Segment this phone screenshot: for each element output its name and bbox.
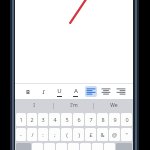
staticText: ; — [54, 131, 56, 138]
button[interactable]: 4 — [49, 113, 60, 126]
button[interactable] — [104, 143, 115, 150]
staticText: A — [74, 87, 78, 95]
button[interactable]: Drawing canvas — [15, 0, 133, 83]
staticText: I — [33, 102, 35, 109]
staticText: - — [20, 131, 22, 138]
button[interactable] — [68, 143, 79, 150]
button[interactable]: & — [97, 128, 108, 141]
button[interactable]: We — [94, 99, 133, 112]
button[interactable]: 3 — [38, 113, 48, 126]
button[interactable]: : — [38, 128, 48, 141]
button[interactable]: - — [16, 128, 26, 141]
staticText: ) — [78, 131, 80, 138]
staticText: / — [31, 131, 34, 138]
staticText: @ — [112, 131, 117, 138]
button[interactable]: Align right — [115, 86, 127, 97]
staticText: I — [42, 88, 45, 96]
button[interactable]: ( — [61, 128, 72, 141]
staticText: We — [110, 102, 118, 109]
button[interactable] — [32, 143, 43, 150]
staticText: U — [57, 87, 62, 95]
button[interactable]: 2 — [27, 113, 37, 126]
staticText: B — [26, 88, 30, 96]
button[interactable] — [44, 143, 55, 150]
staticText: 1 — [19, 116, 23, 123]
staticText: £ — [89, 131, 93, 138]
button[interactable]: Underline — [53, 85, 66, 98]
button[interactable]: / — [27, 128, 37, 141]
staticText: 9 — [113, 116, 117, 123]
button[interactable]: " — [121, 128, 132, 141]
button[interactable]: Align left — [85, 86, 97, 97]
button[interactable]: @ — [109, 128, 120, 141]
button[interactable]: 7 — [85, 113, 96, 126]
staticText: 5 — [65, 116, 69, 123]
button[interactable]: ; — [49, 128, 60, 141]
button[interactable] — [80, 143, 91, 150]
staticText: : — [42, 131, 44, 138]
staticText: 6 — [77, 116, 81, 123]
staticText: ( — [66, 131, 68, 138]
button[interactable]: 9 — [109, 113, 120, 126]
button[interactable]: Text color — [69, 85, 82, 98]
staticText: I'm — [70, 102, 78, 109]
button[interactable]: Align center — [100, 86, 112, 97]
button[interactable]: 0 — [121, 113, 132, 126]
button[interactable] — [56, 143, 67, 150]
button[interactable]: 6 — [73, 113, 84, 126]
button[interactable]: 5 — [61, 113, 72, 126]
staticText: & — [100, 131, 105, 138]
button[interactable]: Italic — [37, 85, 50, 98]
staticText: 2 — [30, 116, 34, 123]
staticText: " — [125, 131, 128, 138]
button[interactable]: 8 — [97, 113, 108, 126]
button[interactable]: Bold — [21, 85, 34, 98]
button[interactable]: ) — [73, 128, 84, 141]
button[interactable]: I'm — [54, 99, 93, 112]
staticText: 7 — [89, 116, 93, 123]
staticText: 8 — [101, 116, 105, 123]
button[interactable] — [92, 143, 103, 150]
button[interactable]: I — [15, 99, 53, 112]
staticText: 3 — [41, 116, 45, 123]
button[interactable]: 1 — [16, 113, 26, 126]
button[interactable]: £ — [85, 128, 96, 141]
staticText: 0 — [125, 116, 129, 123]
staticText: 4 — [53, 116, 57, 123]
